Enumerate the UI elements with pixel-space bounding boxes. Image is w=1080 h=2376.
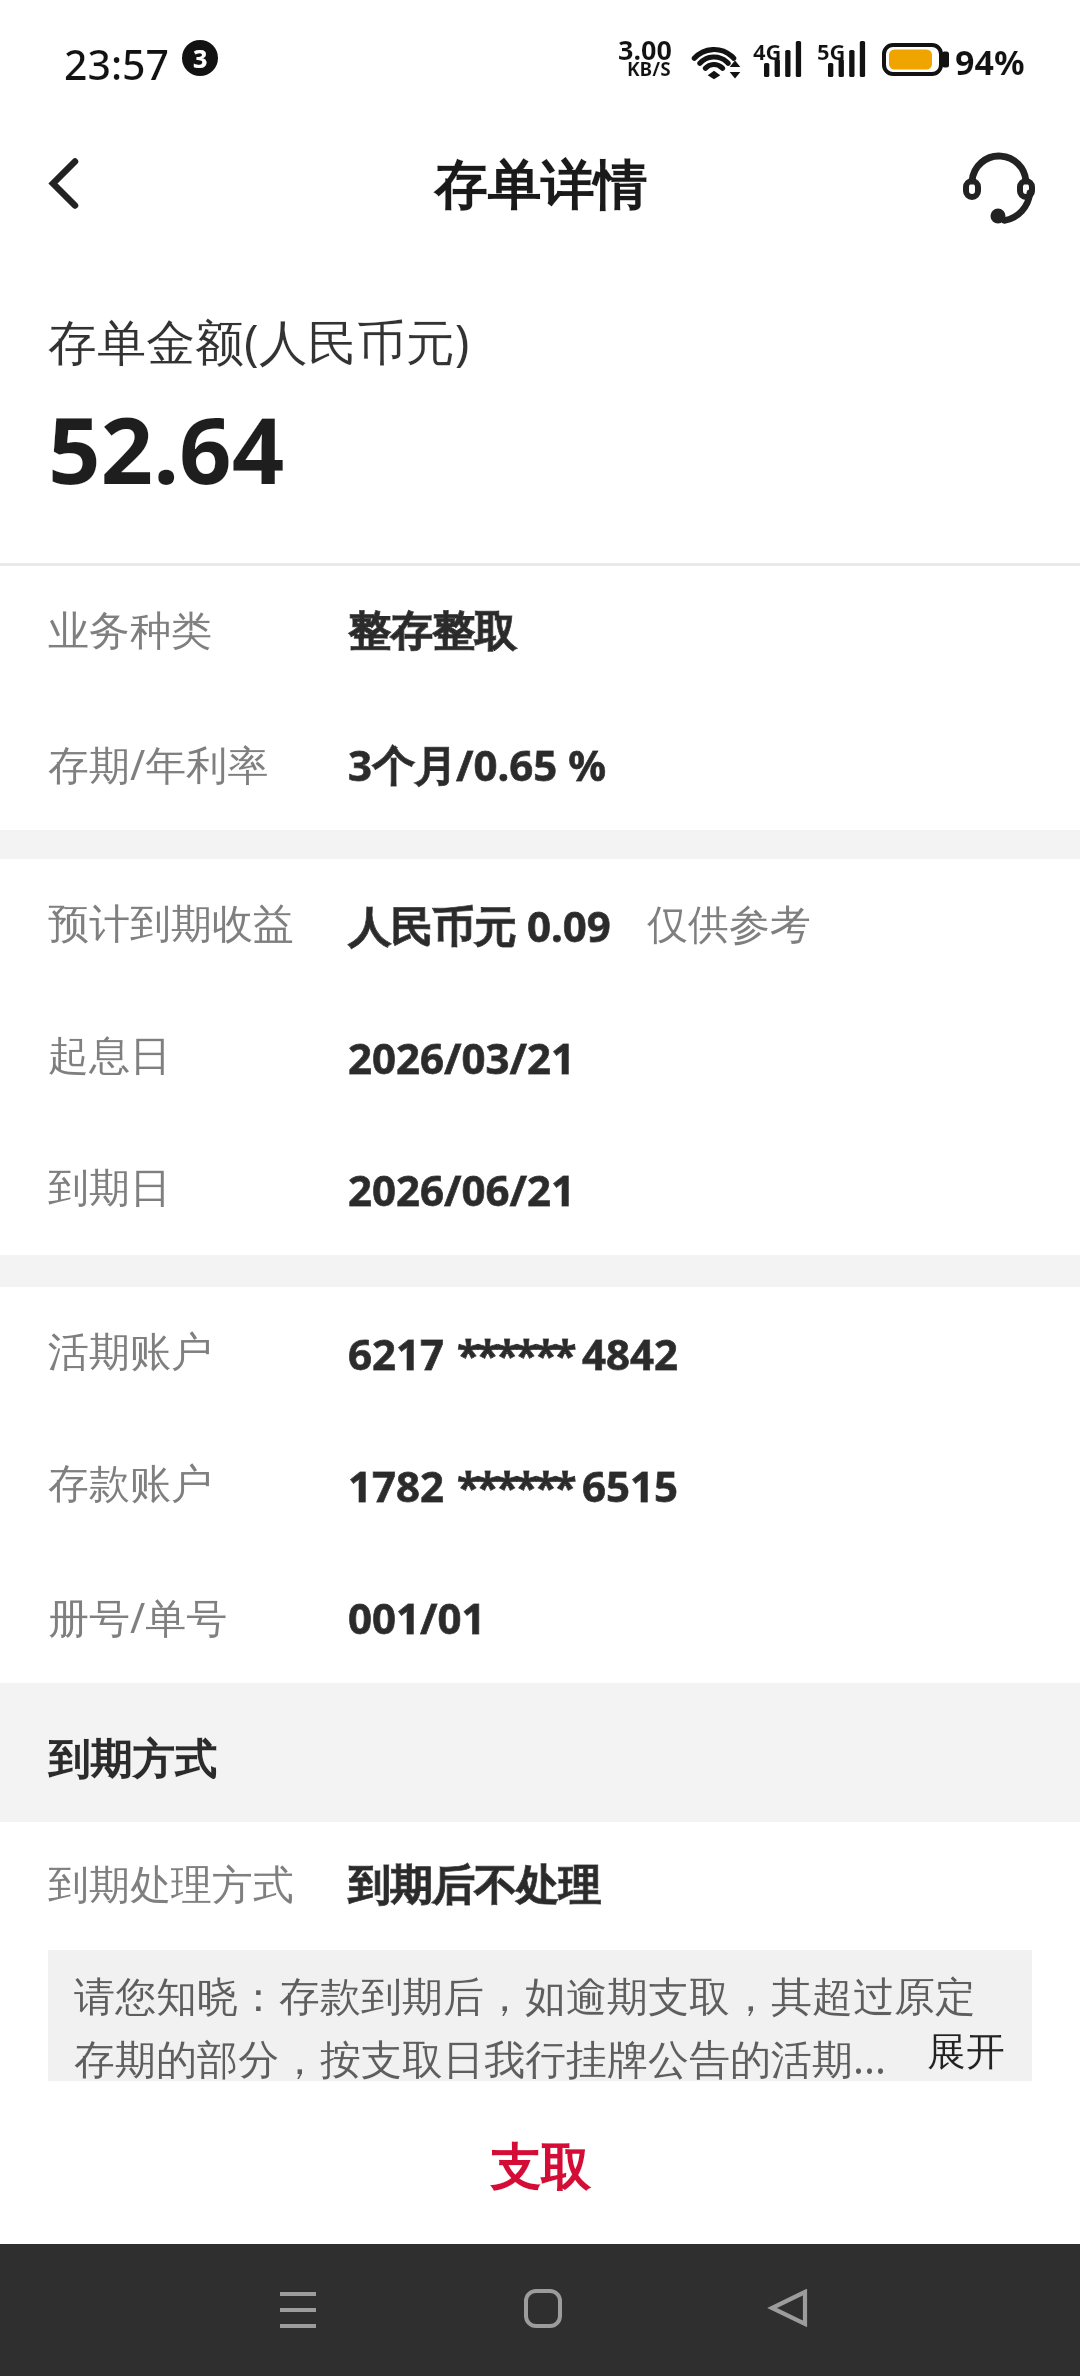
staticText: 3: [193, 41, 208, 75]
staticText: 6515: [582, 1457, 679, 1514]
staticText: 起息日: [48, 1031, 171, 1083]
staticText: 存单详情: [434, 153, 646, 220]
staticText: 3个月/0.65 %: [348, 736, 607, 793]
staticText: ******: [457, 1325, 574, 1382]
button[interactable]: Customer service: [945, 132, 1053, 240]
staticText: 存单金额(人民币元): [48, 308, 470, 375]
staticText: 52.64: [48, 386, 285, 511]
button[interactable]: Recents: [244, 2256, 352, 2364]
staticText: 到期处理方式: [48, 1860, 294, 1912]
button[interactable]: 业务种类: [0, 566, 1080, 698]
button[interactable]: 到期日: [0, 1123, 1080, 1255]
staticText: 展开: [927, 2027, 1005, 2076]
staticText: 册号/单号: [48, 1589, 228, 1645]
staticText: ******: [457, 1457, 574, 1514]
button[interactable]: Home: [490, 2256, 598, 2364]
button[interactable]: Back: [733, 2256, 841, 2364]
staticText: 6515: [582, 1457, 679, 1514]
staticText: 业务种类: [48, 606, 212, 658]
staticText: KB/S: [627, 56, 671, 82]
staticText: 到期方式: [48, 1734, 216, 1787]
staticText: 3.00: [618, 31, 672, 68]
button[interactable]: 请您知晓：存款到期后，如逾期支取，其超过原定存期的部分，按支取日我行挂牌公告的活…: [48, 1950, 1032, 2081]
staticText: 活期账户: [48, 1327, 212, 1379]
staticText: 2026/03/21: [348, 1029, 576, 1086]
button[interactable]: 预计到期收益: [0, 859, 1080, 991]
staticText: 3个月/0.65 %: [348, 736, 607, 793]
staticText: 整存整取: [348, 606, 516, 659]
staticText: 23:57: [64, 36, 169, 92]
button[interactable]: 存期/年利率: [0, 698, 1080, 830]
staticText: ******: [457, 1325, 574, 1382]
button[interactable]: 存款账户: [0, 1419, 1080, 1551]
staticText: 001/01: [348, 1589, 486, 1646]
staticText: 1782: [348, 1457, 445, 1514]
staticText: 2026/03/21: [348, 1029, 576, 1086]
staticText: 4G: [753, 36, 782, 66]
staticText: 94%: [955, 39, 1025, 85]
button[interactable]: 起息日: [0, 991, 1080, 1123]
button[interactable]: 支取: [0, 2123, 1080, 2213]
staticText: 到期后不处理: [348, 1860, 600, 1913]
staticText: 存款账户: [48, 1459, 212, 1511]
staticText: 整存整取: [348, 606, 516, 659]
button[interactable]: 活期账户: [0, 1287, 1080, 1419]
staticText: ******: [457, 1457, 574, 1514]
staticText: 到期日: [48, 1163, 171, 1215]
staticText: 6217: [348, 1325, 445, 1382]
staticText: 2026/06/21: [348, 1161, 576, 1218]
staticText: 仅供参考: [647, 900, 811, 952]
staticText: 到期后不处理: [348, 1860, 600, 1913]
button[interactable]: 册号/单号: [0, 1551, 1080, 1683]
staticText: 人民币元 0.09: [348, 897, 611, 954]
staticText: 2026/06/21: [348, 1161, 576, 1218]
staticText: 人民币元 0.09: [348, 897, 611, 954]
staticText: 5G: [817, 36, 846, 66]
staticText: 001/01: [348, 1589, 486, 1646]
staticText: 支取: [490, 2137, 590, 2200]
staticText: 1782: [348, 1457, 445, 1514]
staticText: 预计到期收益: [48, 899, 294, 951]
staticText: 6217: [348, 1325, 445, 1382]
button[interactable]: 到期处理方式: [0, 1822, 1080, 1950]
staticText: 存期/年利率: [48, 736, 269, 792]
staticText: 请您知晓：存款到期后，如逾期支取，其超过原定存期的部分，按支取日我行挂牌公告的活…: [74, 1972, 992, 2086]
staticText: 4842: [582, 1325, 679, 1382]
staticText: 4842: [582, 1325, 679, 1382]
button[interactable]: Back: [10, 131, 118, 239]
